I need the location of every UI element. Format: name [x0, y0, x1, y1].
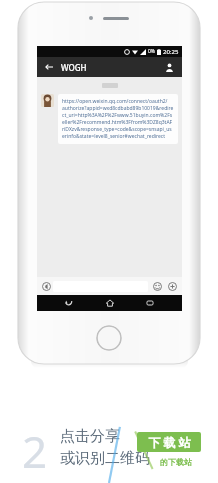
staticText: 2 — [22, 421, 48, 481]
button[interactable]: Emoji — [151, 280, 164, 293]
button[interactable]: Recent apps — [142, 295, 158, 311]
staticText: WOGH — [61, 62, 87, 73]
staticText: 或识别二维码 — [60, 449, 150, 468]
staticText: 点击分享 — [60, 427, 120, 446]
staticText: 的下载站 — [160, 457, 192, 467]
staticText: 20:25 — [163, 48, 179, 56]
button[interactable]: Voice message — [40, 280, 53, 293]
staticText: https://open.weixin.qq.com/connect/oauth… — [62, 98, 174, 140]
button[interactable]: Avatar — [41, 94, 54, 107]
button[interactable]: Home — [102, 295, 118, 311]
staticText: 0% — [148, 48, 156, 55]
other: Home button — [96, 325, 122, 351]
button[interactable]: Contact info — [162, 60, 177, 75]
button[interactable]: More — [166, 280, 179, 293]
button[interactable]: Back — [61, 295, 77, 311]
staticText: 下 载 站 — [148, 434, 191, 450]
button[interactable]: Back — [42, 60, 56, 74]
button[interactable]: https://open.weixin.qq.com/connect/oauth… — [58, 94, 178, 144]
